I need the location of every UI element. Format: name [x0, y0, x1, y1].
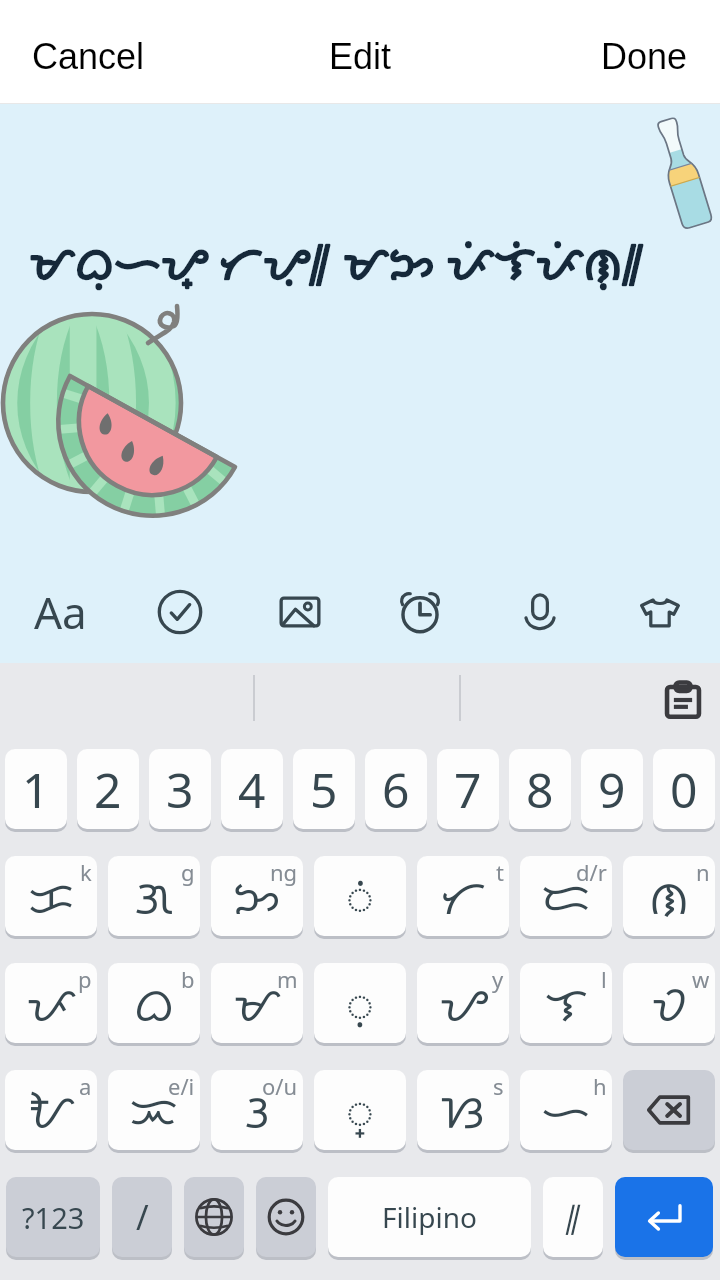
button[interactable]: ᜈ	[623, 856, 715, 936]
button[interactable]: Done	[585, 22, 704, 90]
button[interactable]: 3	[149, 749, 211, 829]
staticText: ?123	[22, 1198, 85, 1237]
staticText: 4	[238, 757, 266, 822]
button[interactable]: Sticker	[600, 564, 720, 660]
button[interactable]: ᜁ	[108, 1070, 200, 1150]
button[interactable]: Voice note	[480, 564, 600, 660]
button[interactable]: ᜂ	[211, 1070, 303, 1150]
staticText: ᜃ	[28, 864, 75, 928]
staticText: l	[601, 964, 607, 994]
button[interactable]: 5	[293, 749, 355, 829]
staticText: ◌ᜒ	[346, 864, 374, 928]
staticText: Aa	[34, 582, 87, 642]
button[interactable]: ᜇ	[520, 856, 612, 936]
button[interactable]: Backspace	[623, 1070, 715, 1150]
button[interactable]: ᜉ	[5, 963, 97, 1043]
staticText: Cancel	[32, 36, 145, 76]
button[interactable]: ᜀ	[5, 1070, 97, 1150]
staticText: p	[78, 964, 92, 994]
staticText: s	[493, 1071, 504, 1101]
staticText: ᜈ	[649, 864, 689, 928]
staticText: a	[79, 1071, 92, 1101]
staticText: /	[136, 1194, 149, 1240]
button[interactable]: Filipino	[328, 1177, 531, 1257]
button[interactable]: ᜑ	[520, 1070, 612, 1150]
button[interactable]: ᜏ	[623, 963, 715, 1043]
button[interactable]: Clipboard	[654, 671, 712, 729]
staticText: ᜁ	[130, 1078, 178, 1142]
staticText: ◌᜔	[346, 1078, 374, 1142]
staticText: w	[692, 964, 710, 994]
staticText: ᜌ	[439, 971, 488, 1035]
staticText: ᜋᜊᜓᜑᜌ᜔ ᜆᜌᜓ᜶ ᜋᜅ ᜉᜒᜎᜒᜉᜒᜈᜓ᜶	[29, 231, 644, 292]
staticText: 7	[454, 757, 482, 822]
staticText: ᜄ	[134, 864, 174, 928]
staticText: 3	[166, 757, 194, 822]
staticText: o/u	[262, 1071, 298, 1101]
button[interactable]: Checklist	[120, 564, 240, 660]
staticText: 6	[382, 757, 410, 822]
button[interactable]: 2	[77, 749, 139, 829]
staticText: Filipino	[382, 1198, 477, 1236]
staticText: 5	[310, 757, 338, 822]
button[interactable]: ᜌ	[417, 963, 509, 1043]
button[interactable]: Enter	[615, 1177, 713, 1257]
staticText: ᜋᜊᜓᜑᜌ᜔ ᜆᜌᜓ᜶ ᜋᜅ ᜉᜒᜎᜒᜉᜒᜈᜓ᜶	[29, 231, 644, 292]
staticText: ᜐ	[441, 1078, 485, 1142]
button[interactable]: ᜃ	[5, 856, 97, 936]
button[interactable]: /	[112, 1177, 172, 1257]
staticText: ᜅ	[233, 864, 281, 928]
button[interactable]: ᜐ	[417, 1070, 509, 1150]
button[interactable]: 8	[509, 749, 571, 829]
button[interactable]: ◌ᜓ	[314, 963, 406, 1043]
staticText: ᜉ	[26, 971, 77, 1035]
button[interactable]: ◌ᜒ	[314, 856, 406, 936]
button[interactable]: Edit	[311, 22, 410, 90]
staticText: y	[492, 964, 504, 994]
staticText: ᜆ	[440, 864, 486, 928]
button[interactable]: 9	[581, 749, 643, 829]
button[interactable]: 1	[5, 749, 67, 829]
staticText: n	[696, 857, 710, 887]
staticText: Edit	[329, 36, 392, 76]
staticText: ᜂ	[244, 1078, 270, 1142]
button[interactable]: Emoji	[256, 1177, 316, 1257]
staticText: e/i	[168, 1071, 195, 1101]
button[interactable]: 6	[365, 749, 427, 829]
button[interactable]: ᜶	[543, 1177, 603, 1257]
staticText: ᜋ	[233, 971, 282, 1035]
button[interactable]: Insert photo	[240, 564, 360, 660]
staticText: g	[181, 857, 195, 887]
button[interactable]: ◌᜔	[314, 1070, 406, 1150]
staticText: ᜀ	[27, 1078, 75, 1142]
button[interactable]: ᜅ	[211, 856, 303, 936]
button[interactable]: ᜎ	[520, 963, 612, 1043]
staticText: m	[277, 964, 298, 994]
staticText: k	[80, 857, 92, 887]
button[interactable]: ᜄ	[108, 856, 200, 936]
staticText: Done	[601, 36, 688, 76]
staticText: ᜑ	[541, 1078, 591, 1142]
button[interactable]: ?123	[6, 1177, 100, 1257]
staticText: 2	[94, 757, 122, 822]
staticText: ᜏ	[651, 971, 687, 1035]
button[interactable]: Aa	[0, 564, 120, 660]
staticText: ᜶	[565, 1194, 582, 1240]
button[interactable]: 7	[437, 749, 499, 829]
staticText: ᜇ	[541, 864, 591, 928]
staticText: t	[496, 857, 504, 887]
staticText: ᜊ	[134, 971, 174, 1035]
staticText: ◌ᜓ	[346, 971, 374, 1035]
button[interactable]: 0	[653, 749, 715, 829]
staticText: 8	[526, 757, 554, 822]
staticText: 1	[22, 757, 50, 822]
button[interactable]: Set reminder	[360, 564, 480, 660]
staticText: ᜎ	[545, 971, 588, 1035]
button[interactable]: ᜊ	[108, 963, 200, 1043]
button[interactable]: 4	[221, 749, 283, 829]
button[interactable]: Change language	[184, 1177, 244, 1257]
button[interactable]: Cancel	[16, 22, 161, 90]
button[interactable]: ᜆ	[417, 856, 509, 936]
button[interactable]: ᜋ	[211, 963, 303, 1043]
staticText: h	[593, 1071, 607, 1101]
